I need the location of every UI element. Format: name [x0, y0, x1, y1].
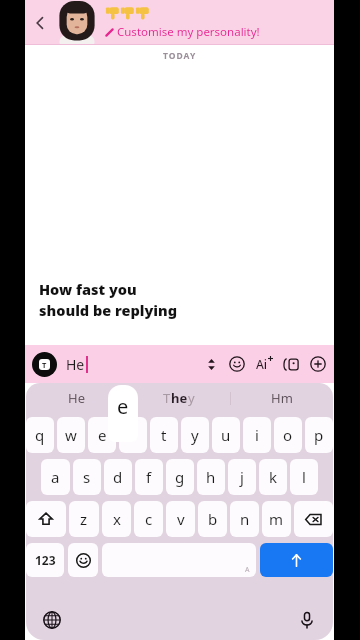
- button[interactable]: f: [135, 459, 163, 495]
- staticText: b: [208, 509, 218, 529]
- staticText: should be replying: [40, 300, 179, 320]
- button[interactable]: v: [166, 501, 195, 537]
- button[interactable]: w: [57, 417, 85, 453]
- staticText: h: [206, 467, 216, 487]
- button[interactable]: x: [102, 501, 131, 537]
- staticText: should be replying: [39, 299, 178, 319]
- button[interactable]: He: [26, 383, 127, 413]
- staticText: s: [83, 467, 91, 487]
- staticText: g: [175, 467, 185, 487]
- staticText: should be replying: [38, 301, 177, 321]
- button[interactable]: Send: [260, 543, 333, 577]
- button[interactable]: g: [166, 459, 194, 495]
- button[interactable]: i: [243, 417, 271, 453]
- staticText: m: [269, 509, 284, 529]
- staticText: j: [240, 467, 244, 487]
- staticText: 123: [35, 552, 56, 568]
- button[interactable]: m: [262, 501, 291, 537]
- button[interactable]: Hm: [231, 383, 333, 413]
- button[interactable]: T: [128, 383, 230, 413]
- staticText: How fast you: [39, 280, 137, 300]
- staticText: should be replying: [38, 299, 177, 319]
- button[interactable]: Back: [25, 0, 55, 45]
- staticText: v: [177, 509, 185, 529]
- button[interactable]: s: [73, 459, 101, 495]
- staticText: should be replying: [39, 300, 178, 320]
- staticText: n: [240, 509, 250, 529]
- staticText: should be replying: [38, 300, 177, 320]
- staticText: Hm: [271, 389, 293, 407]
- button[interactable]: n: [230, 501, 259, 537]
- button[interactable]: t: [150, 417, 178, 453]
- staticText: should be replying: [39, 301, 178, 321]
- staticText: t: [161, 425, 167, 445]
- button[interactable]: Voice input: [291, 604, 323, 636]
- staticText: e: [117, 393, 129, 420]
- button[interactable]: c: [134, 501, 163, 537]
- staticText: TODAY: [163, 50, 197, 62]
- staticText: How fast you: [39, 279, 137, 299]
- button[interactable]: 123: [26, 543, 64, 577]
- staticText: T: [163, 389, 171, 407]
- staticText: he: [171, 389, 188, 407]
- button[interactable]: Reorder: [203, 356, 219, 372]
- staticText: q: [35, 425, 45, 445]
- staticText: y: [191, 425, 199, 445]
- staticText: e: [98, 425, 107, 445]
- button[interactable]: Emoji: [228, 355, 246, 373]
- staticText: should be replying: [40, 301, 179, 321]
- staticText: How fast you: [38, 280, 136, 300]
- button[interactable]: o: [274, 417, 302, 453]
- staticText: A: [245, 565, 250, 575]
- staticText: o: [283, 425, 293, 445]
- staticText: u: [221, 425, 231, 445]
- button[interactable]: Backspace: [294, 501, 333, 537]
- staticText: f: [146, 467, 152, 487]
- staticText: He: [66, 355, 85, 374]
- button[interactable]: l: [290, 459, 318, 495]
- button[interactable]: u: [212, 417, 240, 453]
- button[interactable]: e: [88, 417, 116, 453]
- button[interactable]: d: [104, 459, 132, 495]
- staticText: k: [269, 467, 278, 487]
- staticText: How fast you: [38, 279, 136, 299]
- button[interactable]: He: [66, 345, 203, 383]
- button[interactable]: Text style: [32, 352, 57, 377]
- button[interactable]: Profile avatar: [55, 0, 99, 45]
- staticText: should be replying: [40, 299, 179, 319]
- button[interactable]: z: [69, 501, 99, 537]
- button[interactable]: Customise my personality!: [105, 0, 334, 45]
- button[interactable]: r: [119, 417, 147, 453]
- button[interactable]: h: [197, 459, 225, 495]
- button[interactable]: b: [198, 501, 227, 537]
- staticText: l: [302, 467, 306, 487]
- button[interactable]: Shift: [26, 501, 66, 537]
- staticText: Customise my personality!: [117, 24, 260, 40]
- button[interactable]: Emoji keyboard: [68, 543, 98, 577]
- staticText: z: [80, 509, 88, 529]
- button[interactable]: p: [305, 417, 333, 453]
- staticText: d: [113, 467, 123, 487]
- button[interactable]: Space: [102, 543, 256, 577]
- staticText: a: [51, 467, 60, 487]
- button[interactable]: j: [228, 459, 256, 495]
- staticText: p: [314, 425, 324, 445]
- button[interactable]: k: [259, 459, 287, 495]
- button[interactable]: Stickers: [282, 355, 300, 373]
- staticText: How fast you: [39, 278, 137, 298]
- staticText: c: [145, 509, 153, 529]
- staticText: w: [65, 425, 77, 445]
- staticText: How fast you: [38, 278, 136, 298]
- button[interactable]: a: [41, 459, 70, 495]
- button[interactable]: AI writing help: [255, 355, 273, 373]
- staticText: How fast you: [40, 279, 138, 299]
- button[interactable]: Change language: [36, 604, 68, 636]
- button[interactable]: q: [26, 417, 54, 453]
- staticText: How fast you: [40, 278, 138, 298]
- button[interactable]: More options: [309, 355, 327, 373]
- staticText: Ai: [256, 356, 268, 372]
- staticText: x: [113, 509, 121, 529]
- button[interactable]: y: [181, 417, 209, 453]
- staticText: T: [42, 360, 47, 370]
- staticText: y: [188, 389, 195, 407]
